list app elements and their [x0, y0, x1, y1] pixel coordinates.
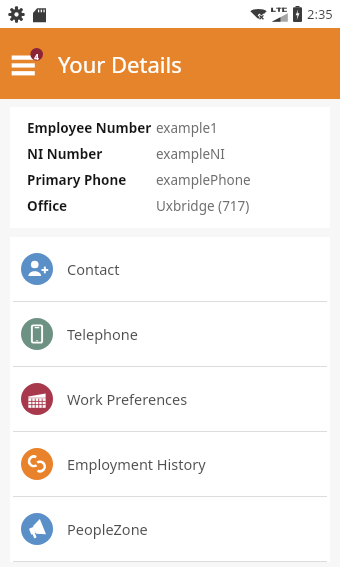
staticText: examplePhone	[156, 171, 251, 189]
staticText: Your Details	[58, 49, 182, 79]
staticText: Employee Number	[27, 119, 152, 137]
staticText: PeopleZone	[67, 519, 148, 539]
staticText: 4	[34, 51, 39, 62]
button[interactable]: Telephone	[10, 302, 330, 366]
staticText: NI Number	[27, 145, 103, 163]
staticText: exampleNI	[156, 145, 225, 163]
button[interactable]: Contact	[10, 237, 330, 301]
staticText: Telephone	[67, 324, 138, 344]
staticText: 2:35	[307, 5, 333, 23]
button[interactable]: Employment History	[10, 432, 330, 496]
button[interactable]: Work Preferences	[10, 367, 330, 431]
staticText: Employment History	[67, 454, 206, 474]
staticText: Contact	[67, 259, 120, 279]
staticText: Primary Phone	[27, 171, 127, 189]
staticText: Uxbridge (717)	[156, 197, 250, 215]
button[interactable]: Open navigation menu, 4 new	[5, 41, 51, 87]
staticText: example1	[156, 119, 218, 137]
staticText: Office	[27, 197, 68, 215]
button[interactable]: PeopleZone	[10, 497, 330, 561]
staticText: Work Preferences	[67, 389, 188, 409]
